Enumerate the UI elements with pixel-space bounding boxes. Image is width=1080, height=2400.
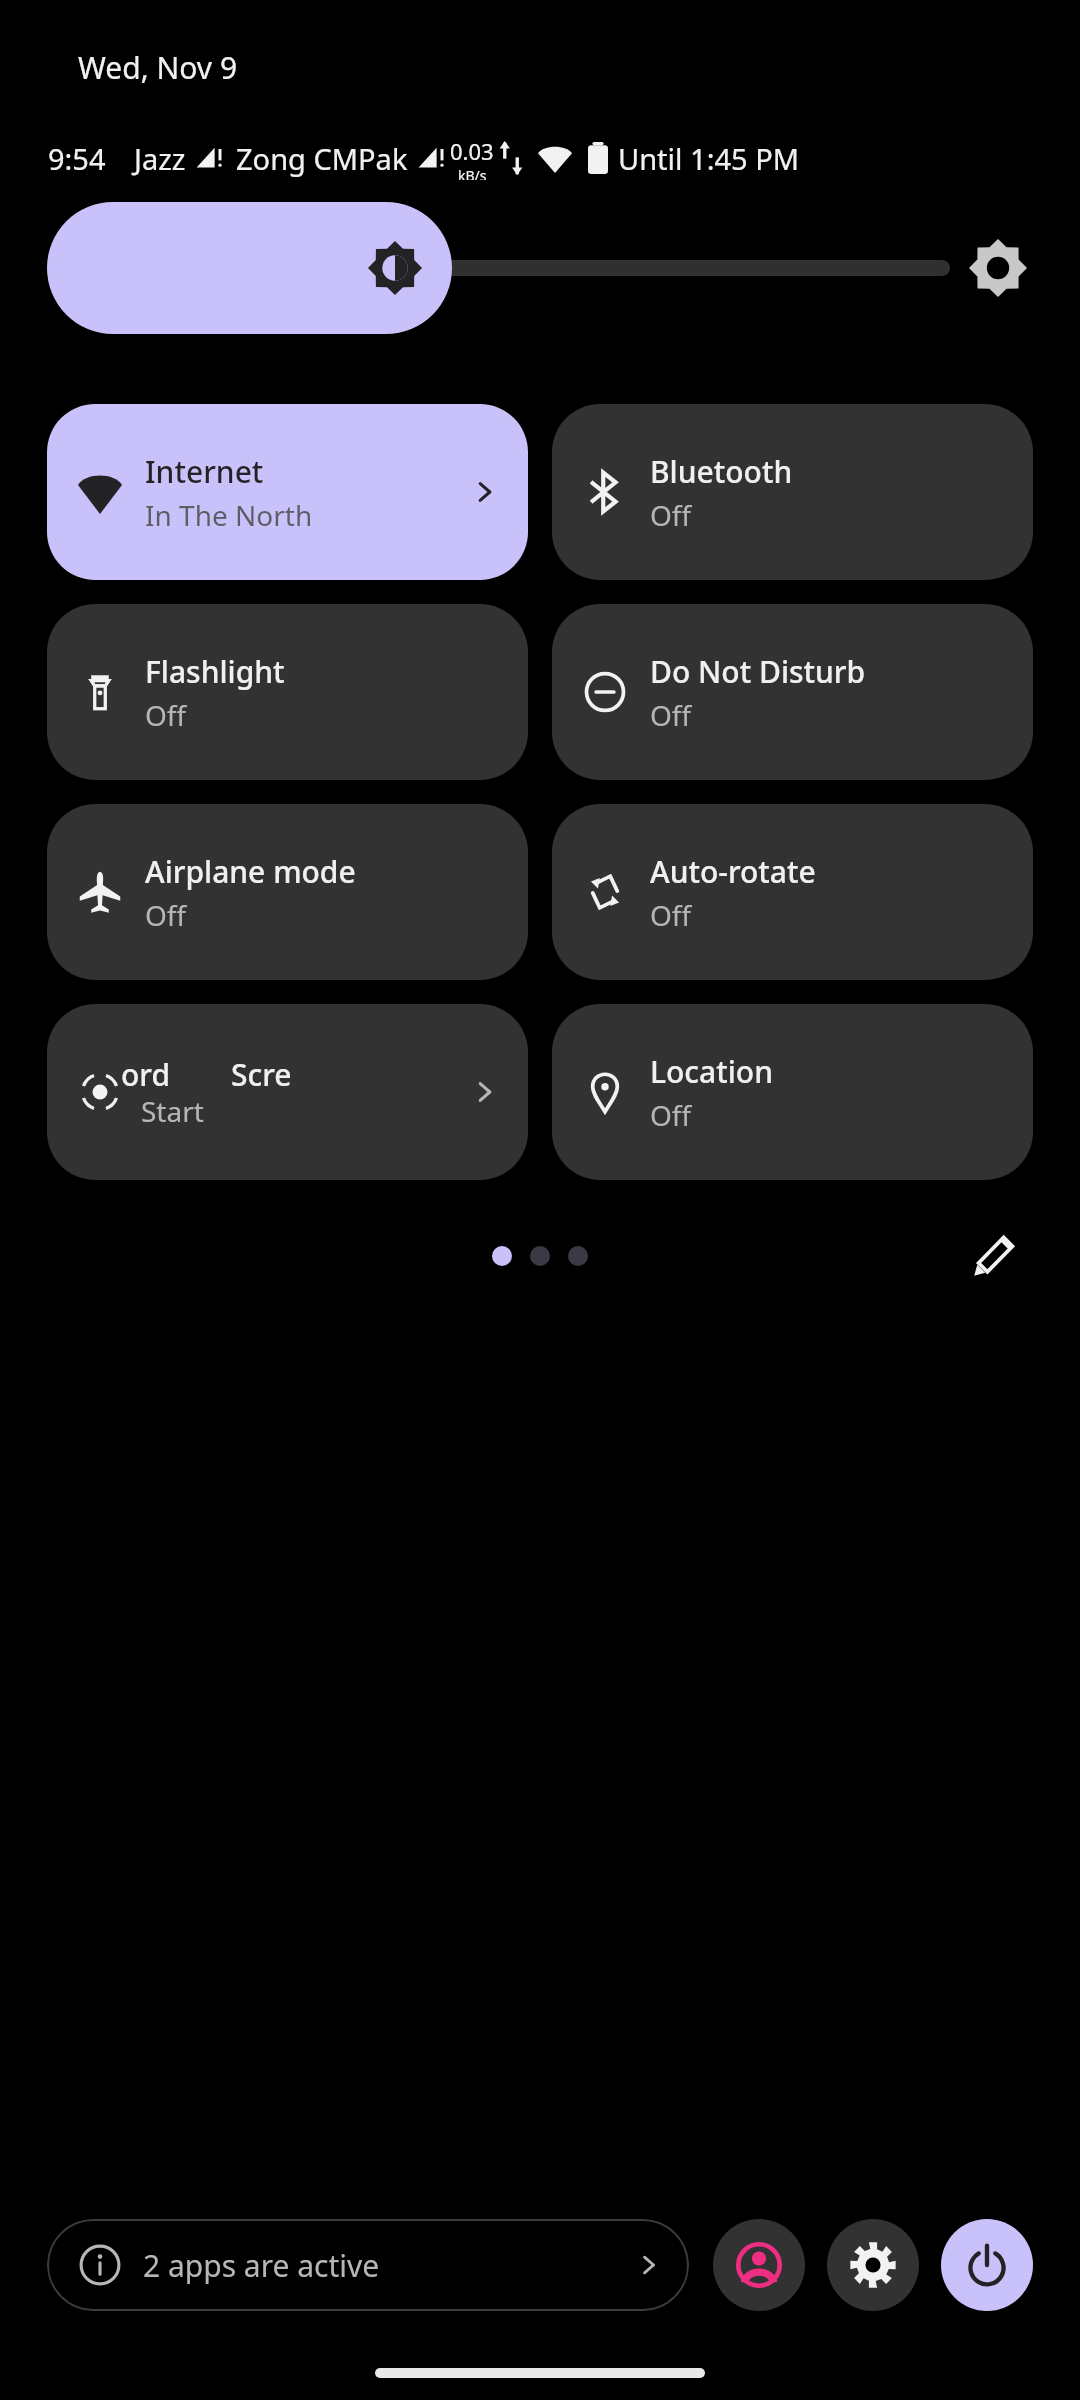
staticText: 0.03 xyxy=(450,136,494,166)
staticText: 9:54 xyxy=(48,139,106,178)
staticText: kB/s xyxy=(458,166,487,180)
button[interactable]: Auto-rotate xyxy=(552,804,1033,980)
staticText: Off xyxy=(650,1096,692,1134)
staticText: Scre xyxy=(231,1054,292,1092)
button[interactable]: Edit tiles xyxy=(958,1220,1030,1292)
staticText: Off xyxy=(145,696,187,734)
staticText: Bluetooth xyxy=(650,451,793,492)
staticText: Off xyxy=(145,896,187,934)
staticText: Flashlight xyxy=(145,651,285,692)
staticText: Zong CMPak xyxy=(236,139,408,178)
staticText: Jazz xyxy=(134,139,186,178)
button[interactable]: Internet xyxy=(47,404,528,580)
staticText: Until 1:45 PM xyxy=(618,139,800,178)
staticText: Off xyxy=(650,496,692,534)
button[interactable]: Do Not Disturb xyxy=(552,604,1033,780)
button[interactable]: Location xyxy=(552,1004,1033,1180)
staticText: Auto-rotate xyxy=(650,851,816,892)
button[interactable]: Airplane mode xyxy=(47,804,528,980)
button[interactable]: Bluetooth xyxy=(552,404,1033,580)
staticText: Start xyxy=(141,1092,204,1130)
button[interactable]: User xyxy=(713,2219,805,2311)
staticText: Off xyxy=(650,696,692,734)
button[interactable]: Flashlight xyxy=(47,604,528,780)
button[interactable]: 2 apps are active xyxy=(47,2219,689,2311)
button[interactable]: Power xyxy=(941,2219,1033,2311)
staticText: ord xyxy=(121,1054,171,1092)
button[interactable]: Brightness xyxy=(47,202,452,334)
staticText: Internet xyxy=(145,451,264,492)
button[interactable]: ord xyxy=(47,1004,528,1180)
button[interactable]: Auto brightness xyxy=(962,232,1034,304)
staticText: Wed, Nov 9 xyxy=(78,47,238,88)
staticText: In The North xyxy=(145,496,313,534)
staticText: Do Not Disturb xyxy=(650,651,866,692)
button[interactable]: Settings xyxy=(827,2219,919,2311)
staticText: Off xyxy=(650,896,692,934)
staticText: 2 apps are active xyxy=(143,2245,380,2286)
staticText: Location xyxy=(650,1051,773,1092)
staticText: Airplane mode xyxy=(145,851,356,892)
